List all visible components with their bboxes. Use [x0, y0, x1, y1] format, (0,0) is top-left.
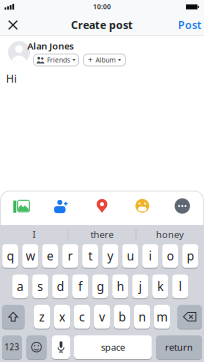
button[interactable]: Tag people [49, 194, 73, 218]
button[interactable]: u [122, 244, 138, 268]
button[interactable]: o [162, 244, 178, 268]
staticText: r [68, 248, 73, 264]
button[interactable]: Add to album [83, 54, 125, 66]
staticText: y [107, 248, 113, 264]
staticText: Alan Jones [27, 40, 74, 52]
staticText: f [78, 278, 82, 294]
button[interactable]: Space [74, 335, 152, 359]
button[interactable]: h [112, 274, 128, 299]
staticText: 123 [4, 342, 19, 352]
button[interactable]: Emoji [26, 335, 46, 359]
staticText: z [39, 309, 45, 325]
staticText: x [59, 309, 65, 325]
staticText: Create post [71, 18, 133, 32]
button[interactable]: b [114, 304, 130, 329]
staticText: p [187, 248, 194, 264]
staticText: 10:00 [93, 2, 111, 11]
button[interactable]: k [152, 274, 168, 299]
button[interactable]: Return [156, 335, 202, 359]
button[interactable]: Dictate [52, 335, 70, 359]
staticText: g [97, 278, 104, 294]
button[interactable]: d [52, 274, 68, 299]
button[interactable]: there [69, 225, 135, 243]
staticText: I [32, 228, 35, 240]
staticText: d [57, 278, 64, 294]
staticText: b [118, 309, 125, 325]
button[interactable]: a [12, 274, 28, 299]
staticText: w [26, 248, 35, 264]
staticText: Friends [47, 56, 70, 64]
button[interactable]: j [132, 274, 148, 299]
button[interactable]: s [32, 274, 48, 299]
staticText: u [127, 248, 134, 264]
staticText: there [90, 228, 113, 240]
staticText: o [167, 248, 174, 264]
button[interactable]: Feeling or activity [130, 194, 154, 218]
button[interactable]: r [62, 244, 78, 268]
staticText: Post [178, 18, 201, 32]
staticText: + [88, 55, 93, 65]
button[interactable]: Audience: Friends [33, 54, 78, 66]
staticText: e [47, 248, 54, 264]
button[interactable]: e [42, 244, 58, 268]
button[interactable]: l [172, 274, 188, 299]
button[interactable]: Delete [177, 304, 202, 329]
button[interactable]: m [154, 304, 170, 329]
button[interactable]: p [182, 244, 198, 268]
button[interactable]: z [34, 304, 50, 329]
button[interactable]: x [54, 304, 70, 329]
button[interactable]: I [1, 225, 67, 243]
staticText: i [149, 248, 152, 264]
button[interactable]: q [2, 244, 18, 268]
staticText: Hi [6, 71, 17, 86]
staticText: c [79, 309, 85, 325]
staticText: t [88, 248, 92, 264]
staticText: honey [156, 228, 184, 240]
button[interactable]: v [94, 304, 110, 329]
button[interactable]: Shift [2, 304, 24, 329]
staticText: m [156, 309, 167, 325]
staticText: return [165, 341, 193, 353]
button[interactable]: i [142, 244, 158, 268]
button[interactable]: y [102, 244, 118, 268]
button[interactable]: w [22, 244, 38, 268]
button[interactable]: honey [137, 225, 203, 243]
button[interactable]: Check in [90, 194, 114, 218]
staticText: h [117, 278, 124, 294]
button[interactable]: c [74, 304, 90, 329]
staticText: s [37, 278, 43, 294]
button[interactable]: Numbers [2, 335, 22, 359]
button[interactable]: More options [170, 194, 194, 218]
staticText: n [138, 309, 145, 325]
staticText: l [179, 278, 182, 294]
staticText: j [139, 278, 142, 294]
button[interactable]: t [82, 244, 98, 268]
staticText: v [99, 309, 105, 325]
button[interactable]: Close [5, 17, 21, 33]
staticText: q [7, 248, 14, 264]
staticText: k [157, 278, 163, 294]
button[interactable]: Photo or video [8, 194, 32, 218]
button[interactable]: n [134, 304, 150, 329]
staticText: a [17, 278, 24, 294]
button[interactable]: g [92, 274, 108, 299]
staticText: space [101, 341, 125, 353]
button[interactable]: f [72, 274, 88, 299]
button[interactable]: Post [178, 18, 201, 32]
staticText: Album [95, 56, 115, 64]
